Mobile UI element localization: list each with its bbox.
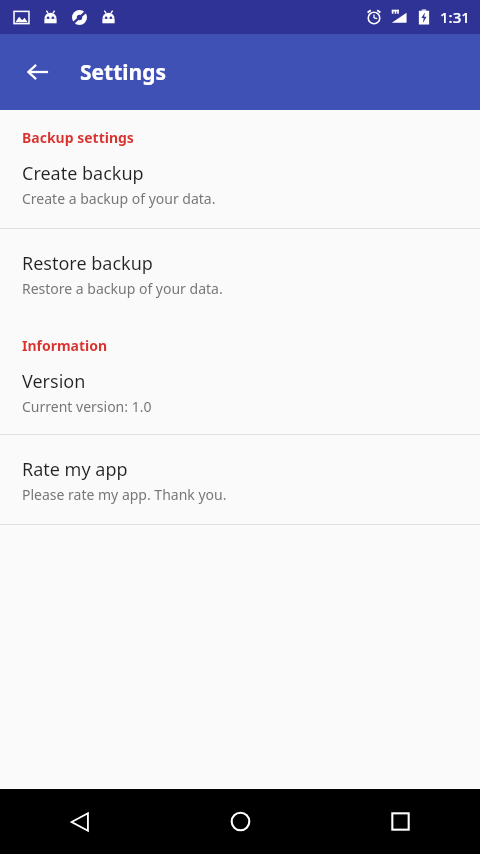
button[interactable]: Back (0, 789, 160, 854)
staticText: Create a backup of your data. (22, 189, 216, 208)
button[interactable]: Rate my app (0, 435, 480, 524)
staticText: Please rate my app. Thank you. (22, 485, 227, 504)
staticText: Create backup (22, 161, 144, 186)
button[interactable]: Back (14, 48, 62, 96)
button[interactable]: Version (0, 355, 480, 434)
button[interactable]: Home (160, 789, 320, 854)
staticText: Current version: 1.0 (22, 397, 152, 416)
staticText: 1:31 (440, 7, 470, 27)
staticText: Restore backup (22, 251, 153, 276)
button[interactable]: Recent apps (320, 789, 480, 854)
staticText: Backup settings (22, 128, 134, 147)
staticText: Version (22, 369, 86, 394)
button[interactable]: Restore backup (0, 229, 480, 320)
staticText: Settings (80, 58, 167, 87)
staticText: Rate my app (22, 457, 128, 482)
button[interactable]: Create backup (0, 147, 480, 228)
staticText: Information (22, 336, 108, 355)
staticText: Restore a backup of your data. (22, 279, 223, 298)
